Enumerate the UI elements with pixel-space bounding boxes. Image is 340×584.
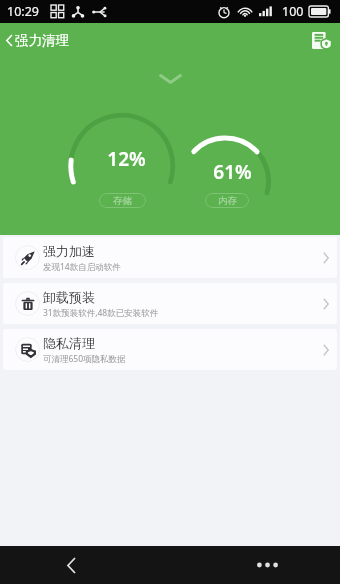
- staticText: 可清理650项隐私数据: [43, 353, 126, 365]
- button[interactable]: 强力加速: [3, 237, 337, 278]
- staticText: 存储: [113, 195, 132, 207]
- staticText: 12%: [102, 146, 151, 172]
- button[interactable]: 卸载预装: [3, 283, 337, 324]
- staticText: 内存: [218, 195, 237, 207]
- staticText: 100: [282, 3, 304, 20]
- button[interactable]: 存储: [99, 193, 146, 208]
- staticText: 发现14款自启动软件: [43, 261, 121, 273]
- staticText: 卸载预装: [43, 289, 95, 305]
- staticText: 强力清理: [15, 32, 69, 49]
- staticText: 强力加速: [43, 243, 95, 259]
- staticText: 隐私清理: [43, 335, 95, 351]
- button[interactable]: 强力清理: [0, 28, 75, 53]
- button[interactable]: Security report: [305, 23, 339, 57]
- button[interactable]: 内存: [205, 193, 249, 208]
- staticText: 31款预装软件,48款已安装软件: [43, 307, 159, 319]
- button[interactable]: 隐私清理: [3, 329, 337, 370]
- button[interactable]: More options: [248, 546, 286, 584]
- staticText: 61%: [208, 159, 257, 185]
- button[interactable]: Back: [52, 546, 90, 584]
- staticText: 10:29: [7, 3, 39, 20]
